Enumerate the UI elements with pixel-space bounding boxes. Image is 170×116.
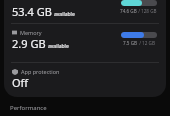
staticText: App protection [21,68,60,75]
staticText: Off [12,75,29,90]
staticText: Performance [10,104,47,112]
staticText: available [48,43,69,50]
button[interactable]: Memory [4,24,166,62]
button[interactable]: 53.4 GB [4,0,166,23]
staticText: available [54,11,75,18]
staticText: / 12 GB [138,40,155,46]
button[interactable]: App protection [4,63,166,97]
staticText: 74.6 GB [120,8,137,14]
staticText: 53.4 GB [12,4,52,19]
staticText: / 128 GB [137,8,157,14]
staticText: 2.9 GB [12,36,46,51]
staticText: 7.5 GB [123,40,138,46]
staticText: Memory [20,29,42,36]
